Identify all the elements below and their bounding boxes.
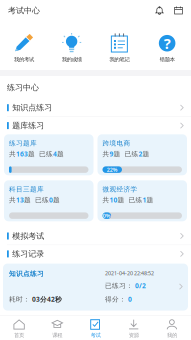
staticText: 03分42秒 (32, 295, 62, 304)
staticText: 错题本 (160, 56, 175, 63)
staticText: 已练 (128, 196, 142, 204)
staticText: 0 (128, 295, 132, 304)
staticText: 我的成绩 (62, 56, 82, 63)
staticText: 题库练习 (12, 121, 44, 130)
staticText: 题 (53, 196, 60, 204)
staticText: 9 (109, 149, 113, 158)
button[interactable]: 知识点练习 (3, 264, 188, 311)
staticText: 模拟考试 (12, 231, 44, 241)
staticText: 4 (53, 149, 57, 158)
button[interactable]: 考试 (76, 318, 115, 339)
button[interactable]: 练习记录 (0, 245, 191, 263)
staticText: 163 (16, 149, 28, 158)
staticText: 考试中心 (8, 6, 40, 15)
staticText: 2 (138, 149, 142, 158)
button[interactable]: 知识点练习 (0, 99, 191, 116)
staticText: 10 (109, 195, 117, 204)
staticText: 0 (49, 195, 53, 204)
staticText: ? (164, 33, 171, 53)
staticText: 练习中心 (7, 83, 39, 92)
staticText: 已练习： (105, 282, 135, 290)
staticText: 已练 (35, 196, 49, 204)
button[interactable]: 我的考试 (0, 32, 48, 63)
staticText: 知识点练习 (9, 270, 44, 278)
staticText: 已练 (124, 150, 138, 158)
staticText: 共 (102, 196, 109, 204)
staticText: 0/2 (135, 281, 146, 290)
button[interactable]: 练习题库 (4, 134, 93, 175)
staticText: 题 (28, 150, 35, 158)
staticText: 共 (9, 150, 16, 158)
staticText: 得分： (105, 295, 128, 303)
button[interactable]: 通知 (155, 5, 164, 15)
button[interactable]: 首页 (0, 318, 38, 339)
button[interactable]: 我的成绩 (48, 32, 96, 63)
staticText: 科目三题库 (9, 185, 44, 193)
button[interactable]: 日历 (174, 5, 183, 15)
staticText: 跨境电商 (102, 139, 130, 147)
staticText: 考试 (90, 332, 100, 339)
staticText: 2021-04-20 22:48:52 (105, 270, 154, 277)
button[interactable]: 微观经济学 (97, 180, 187, 221)
staticText: 题 (117, 196, 124, 204)
staticText: 0% (103, 212, 111, 219)
button[interactable]: 跨境电商 (97, 134, 187, 175)
staticText: 共 (9, 196, 16, 204)
staticText: 已练 (39, 150, 53, 158)
button[interactable]: 科目三题库 (4, 180, 93, 221)
staticText: 练习记录 (12, 249, 44, 259)
staticText: 耗时： (9, 295, 32, 303)
staticText: 题 (57, 150, 64, 158)
staticText: 首页 (14, 332, 24, 339)
staticText: 资源 (129, 332, 139, 339)
staticText: 题 (146, 196, 153, 204)
staticText: 微观经济学 (102, 185, 137, 193)
button[interactable]: 资源 (115, 318, 153, 339)
staticText: 知识点练习 (12, 103, 52, 113)
button[interactable]: ? (143, 32, 191, 63)
button[interactable]: 我的笔记 (95, 32, 143, 63)
button[interactable]: 题库练习 (0, 117, 191, 134)
staticText: 课程 (52, 332, 62, 339)
staticText: 共 (102, 150, 109, 158)
staticText: 我的笔记 (109, 56, 129, 63)
staticText: 题 (142, 150, 149, 158)
staticText: 题 (24, 196, 31, 204)
staticText: 13 (16, 195, 24, 204)
staticText: 练习题库 (9, 139, 37, 147)
button[interactable]: 我的 (153, 318, 191, 339)
button[interactable]: 模拟考试 (0, 227, 191, 245)
staticText: 22% (107, 166, 118, 173)
staticText: 题 (113, 150, 120, 158)
staticText: 我的考试 (14, 56, 34, 63)
staticText: 1 (142, 195, 146, 204)
button[interactable]: 课程 (38, 318, 76, 339)
staticText: 我的 (167, 332, 177, 339)
